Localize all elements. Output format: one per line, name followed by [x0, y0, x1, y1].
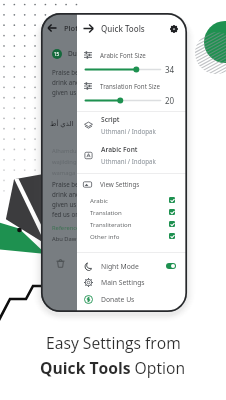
button[interactable]: Settings — [167, 22, 181, 36]
staticText: Plot — [64, 23, 79, 33]
button[interactable]: Night Mode — [77, 258, 187, 274]
staticText: Du — [68, 49, 77, 58]
button[interactable]: Close Quick Tools — [77, 17, 187, 40]
staticText: Night Mode — [101, 262, 139, 271]
staticText: Arabic Font Size — [100, 51, 146, 59]
staticText: 34 — [165, 64, 175, 75]
button[interactable]: Arabic — [77, 194, 187, 206]
staticText: drink and — [52, 78, 80, 86]
staticText: View Settings — [100, 180, 140, 189]
staticText: Praise be — [52, 180, 79, 188]
staticText: 15 — [54, 51, 60, 57]
staticText: Translation — [90, 208, 122, 216]
staticText: Quick Tools — [101, 23, 145, 34]
button[interactable]: Other info — [77, 230, 187, 242]
staticText: Abu Dawu — [52, 235, 80, 243]
button[interactable]: Main Settings — [77, 274, 187, 290]
button[interactable]: Donate Us — [77, 291, 187, 307]
button[interactable]: Translation — [77, 206, 187, 218]
staticText: Donate Us — [101, 295, 135, 304]
staticText: Arabic — [90, 196, 108, 204]
staticText: Easy Settings from — [46, 332, 181, 353]
staticText: Arabic Font — [101, 145, 138, 154]
staticText: wajilding — [52, 158, 77, 166]
staticText: Praise be — [52, 68, 79, 76]
staticText: drink and — [52, 190, 80, 198]
staticText: 20 — [165, 95, 175, 106]
staticText: Alhamdu — [52, 147, 77, 155]
staticText: Main Settings — [101, 278, 145, 287]
button[interactable]: Transliteration — [77, 218, 187, 230]
staticText: Other info — [90, 232, 120, 240]
staticText: الذي أط — [50, 119, 74, 129]
button[interactable]: Arabic font size — [77, 49, 187, 78]
staticText: given us — [52, 88, 78, 96]
button[interactable]: Arabic Font — [77, 141, 187, 169]
staticText: Quick Tools Option — [40, 357, 186, 378]
button[interactable]: Script — [77, 111, 187, 139]
staticText: Script — [101, 115, 120, 124]
button[interactable]: Translation font size — [77, 80, 187, 109]
staticText: Uthmani / Indopak — [101, 127, 156, 135]
staticText: given us — [52, 200, 78, 208]
staticText: Transliteration — [90, 220, 132, 228]
staticText: Reference — [52, 224, 80, 232]
staticText: Uthmani / Indopak — [101, 157, 156, 165]
staticText: wamaga — [52, 169, 76, 177]
other: Close Quick Tools — [83, 23, 94, 34]
staticText: fed us on — [52, 210, 79, 218]
staticText: Translation Font Size — [100, 82, 160, 90]
